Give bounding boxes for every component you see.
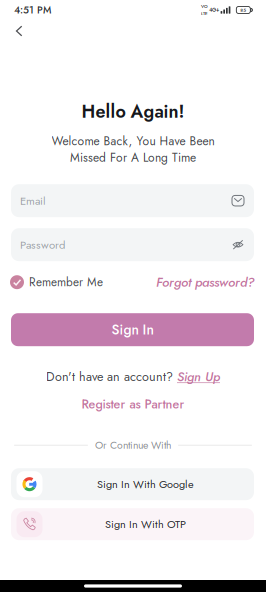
- staticText: Remember Me: [29, 274, 103, 291]
- staticText: Sign In: [111, 320, 153, 340]
- staticText: VO: [201, 3, 208, 10]
- button[interactable]: Sign In With OTP: [11, 508, 254, 540]
- button[interactable]: Sign Up: [177, 367, 220, 386]
- staticText: Welcome Back, You Have Been: [51, 132, 214, 150]
- staticText: Or Continue With: [95, 438, 171, 453]
- staticText: Hello Again!: [81, 98, 184, 124]
- button[interactable]: Register as Partner: [81, 397, 184, 411]
- staticText: Don't have an account?: [46, 368, 173, 386]
- staticText: LTE: [201, 10, 208, 17]
- staticText: 4G+: [209, 6, 219, 14]
- staticText: 4:51 PM: [14, 3, 51, 17]
- staticText: Email: [20, 192, 46, 209]
- staticText: Missed For A Long Time: [70, 149, 196, 166]
- button[interactable]: Remember Me: [10, 274, 103, 291]
- button[interactable]: Forgot password?: [156, 273, 254, 292]
- staticText: Sign In With Google: [97, 476, 194, 492]
- button[interactable]: Back: [7, 20, 31, 42]
- staticText: Password: [20, 236, 65, 253]
- staticText: Sign Up: [177, 367, 220, 386]
- button[interactable]: Sign In: [11, 313, 254, 346]
- button[interactable]: Sign In With Google: [11, 468, 254, 500]
- staticText: 85: [240, 6, 246, 13]
- staticText: Register as Partner: [81, 395, 184, 413]
- staticText: Sign In With OTP: [105, 516, 186, 532]
- staticText: Forgot password?: [156, 273, 254, 292]
